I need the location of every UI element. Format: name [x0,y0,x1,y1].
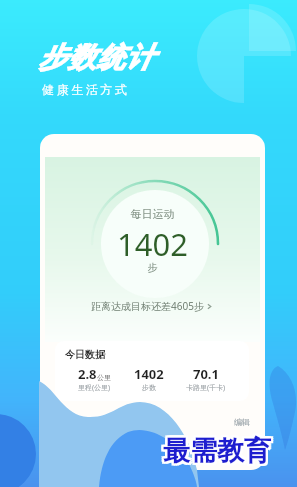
staticText: 最需教育 [163,434,271,468]
staticText: 2.8 [78,365,97,383]
staticText: 公里 [97,373,111,382]
staticText: 最需教育 [165,436,273,470]
staticText: 1402 [40,223,265,265]
staticText: 健康生活方式 [41,82,128,97]
staticText: 步数 [142,383,156,392]
staticText: 最需教育 [161,436,269,470]
staticText: 我的信息 [55,415,95,428]
staticText: 最需教育 [165,434,273,468]
staticText: 步 [40,261,265,274]
staticText: 步数统计 [38,40,154,75]
staticText: 卡路里(千卡) [186,383,226,393]
staticText: 最需教育 [161,434,269,468]
staticText: 最需教育 [163,436,271,470]
staticText: 最需教育 [161,432,269,466]
staticText: 每日运动 [40,207,265,221]
staticText: 里程(公里) [78,383,111,393]
button[interactable]: 距离达成目标还差4605步 [40,299,265,313]
staticText: 今日数据 [65,348,105,361]
staticText: 距离达成目标还差4605步 [91,299,204,313]
staticText: 最需教育 [165,432,273,466]
staticText: 70.1 [193,365,219,383]
staticText: 最需教育 [163,432,271,466]
staticText: 编辑 [234,417,250,427]
staticText: 1402 [134,365,164,383]
